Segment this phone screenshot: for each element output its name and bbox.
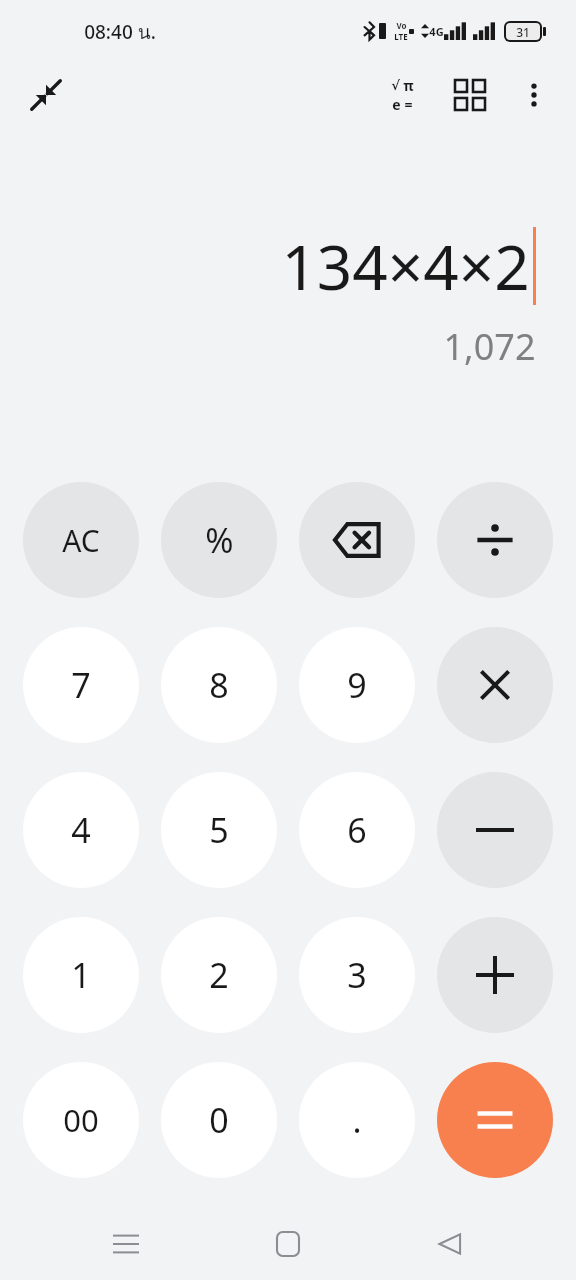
button[interactable]: AC xyxy=(23,482,139,598)
staticText: 08:40 น. xyxy=(84,17,156,47)
button[interactable]: . xyxy=(299,1062,415,1178)
button[interactable]: 2 xyxy=(161,917,277,1033)
staticText: % xyxy=(205,517,234,563)
staticText: 8 xyxy=(209,662,229,708)
button[interactable]: Collapse xyxy=(18,67,74,123)
staticText: 1 xyxy=(71,952,91,998)
button[interactable]: Divide xyxy=(437,482,553,598)
button[interactable]: Subtract xyxy=(437,772,553,888)
button[interactable]: Equals xyxy=(437,1062,553,1178)
staticText: 0 xyxy=(209,1097,229,1143)
button[interactable]: 0 xyxy=(161,1062,277,1178)
staticText: 1,072 xyxy=(443,322,536,371)
button[interactable]: More options xyxy=(506,67,562,123)
staticText: 4 xyxy=(71,807,91,853)
button[interactable]: 7 xyxy=(23,627,139,743)
button[interactable]: Add xyxy=(437,917,553,1033)
staticText: 4G xyxy=(429,24,444,39)
staticText: 6 xyxy=(347,807,367,853)
staticText: 00 xyxy=(63,1099,99,1141)
button[interactable]: 6 xyxy=(299,772,415,888)
button[interactable]: Backspace xyxy=(299,482,415,598)
button[interactable]: 4 xyxy=(23,772,139,888)
button[interactable]: 5 xyxy=(161,772,277,888)
button[interactable]: 8 xyxy=(161,627,277,743)
staticText: 31 xyxy=(516,24,530,40)
button[interactable]: % xyxy=(161,482,277,598)
staticText: 134×4×2 xyxy=(281,224,530,308)
staticText: = xyxy=(404,95,413,114)
button[interactable]: 00 xyxy=(23,1062,139,1178)
button[interactable]: 1 xyxy=(23,917,139,1033)
staticText: 3 xyxy=(347,952,367,998)
button[interactable]: Home xyxy=(252,1208,324,1280)
button[interactable]: Multiply xyxy=(437,627,553,743)
staticText: Vo xyxy=(396,20,407,31)
button[interactable]: Converters xyxy=(442,67,498,123)
button[interactable]: Back xyxy=(414,1208,486,1280)
staticText: √ xyxy=(391,78,400,93)
staticText: 2 xyxy=(209,952,229,998)
button[interactable]: 9 xyxy=(299,627,415,743)
button[interactable]: 3 xyxy=(299,917,415,1033)
staticText: 7 xyxy=(71,662,91,708)
staticText: π xyxy=(403,76,414,95)
staticText: . xyxy=(352,1097,362,1143)
staticText: 9 xyxy=(347,662,367,708)
button[interactable]: Scientific mode xyxy=(374,67,430,123)
staticText: 5 xyxy=(209,807,229,853)
button[interactable]: Recent apps xyxy=(90,1208,162,1280)
staticText: LTE xyxy=(394,31,408,42)
staticText: e xyxy=(392,95,401,114)
staticText: AC xyxy=(62,520,100,561)
